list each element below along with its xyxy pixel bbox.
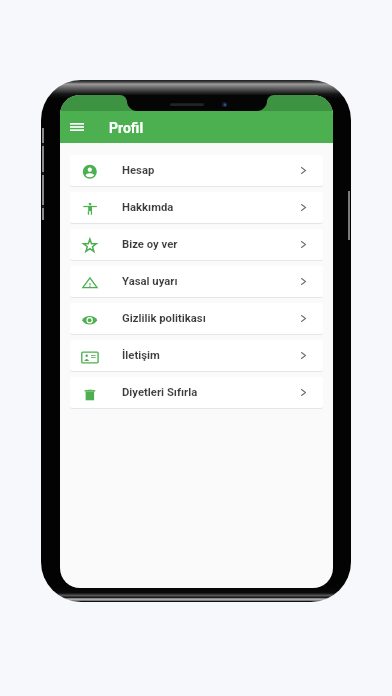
staticText: Gizlilik politikası <box>122 312 206 325</box>
button[interactable]: Bize oy ver <box>70 229 323 260</box>
button[interactable]: Yasal uyarı <box>70 266 323 297</box>
staticText: Profil <box>109 120 144 136</box>
staticText: Hesap <box>122 164 155 177</box>
button[interactable]: Hakkımda <box>70 192 323 223</box>
button[interactable]: Diyetleri Sıfırla <box>70 377 323 408</box>
staticText: Diyetleri Sıfırla <box>122 386 198 399</box>
button[interactable]: Hesap <box>70 155 323 186</box>
staticText: Yasal uyarı <box>122 275 178 288</box>
staticText: Hakkımda <box>122 201 174 214</box>
button[interactable]: İletişim <box>70 340 323 371</box>
staticText: Bize oy ver <box>122 238 178 251</box>
button[interactable]: Menu <box>65 115 89 139</box>
button[interactable]: Gizlilik politikası <box>70 303 323 334</box>
staticText: İletişim <box>122 349 160 362</box>
